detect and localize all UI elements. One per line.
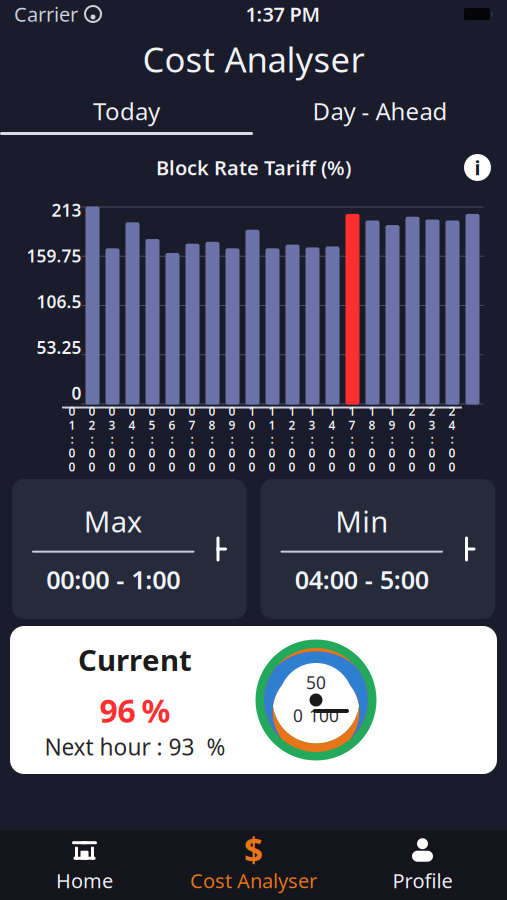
staticText: 04:00 - 5:00 [295,563,429,596]
staticText: 0 [288,445,295,461]
staticText: 1 [268,403,275,419]
staticText: 3 [108,417,115,433]
staticText: 0 [428,445,435,461]
staticText: 0 [168,459,175,475]
staticText: 0 [188,445,195,461]
staticText: : [270,431,273,447]
staticText: 1 [268,417,275,433]
button[interactable]: Home [0,830,169,900]
button[interactable]: Day - Ahead [253,90,507,132]
staticText: 2 [448,403,455,419]
staticText: 6 [168,417,175,433]
staticText: 7 [348,417,355,433]
staticText: 3 [428,417,435,433]
staticText: : [350,431,353,447]
staticText: : [250,431,253,447]
staticText: 8 [208,417,215,433]
staticText: 1 [348,403,355,419]
staticText: : [90,431,93,447]
staticText: 2 [88,417,95,433]
staticText: 0 [388,459,395,475]
staticText: 1 [288,403,295,419]
staticText: 0 [108,459,115,475]
button[interactable]: Min [260,479,495,619]
button[interactable]: Max [12,479,246,619]
staticText: 0 [128,403,135,419]
staticText: 5 [148,417,155,433]
staticText: : [210,431,213,447]
staticText: : [170,431,173,447]
staticText: Cost Analyser [190,867,317,894]
staticText: 4 [128,417,135,433]
staticText: 00:00 - 1:00 [46,563,180,596]
staticText: : [130,431,133,447]
staticText: 0 [148,445,155,461]
staticText: 0 [288,459,295,475]
staticText: 0 [408,417,415,433]
staticText: 2 [428,403,435,419]
staticText: Next hour : 93 % [44,732,225,762]
staticText: 0 [108,403,115,419]
staticText: Home [56,867,113,894]
staticText: 0 [148,459,155,475]
staticText: : [450,431,453,447]
staticText: $ [244,827,263,871]
staticText: 0 [208,445,215,461]
staticText: 0 [228,403,235,419]
staticText: 0 [168,445,175,461]
staticText: Current [78,640,192,679]
staticText: 0 [208,459,215,475]
staticText: : [370,431,373,447]
staticText: 0 [188,459,195,475]
staticText: : [150,431,153,447]
staticText: 9 [228,417,235,433]
staticText: 1:37 PM [245,1,320,27]
staticText: 106.5 [36,290,81,313]
staticText: : [310,431,313,447]
staticText: 0 [228,445,235,461]
staticText: 0 [88,459,95,475]
staticText: 3 [308,417,315,433]
staticText: 0 [248,445,255,461]
staticText: 0 [128,445,135,461]
button[interactable]: Profile [338,830,507,900]
staticText: 0 [108,445,115,461]
staticText: 0 [388,445,395,461]
staticText: : [390,431,393,447]
staticText: i [474,154,480,181]
staticText: 0 [408,445,415,461]
staticText: 0 [268,459,275,475]
staticText: 50 [306,671,326,694]
button[interactable]: Today [0,90,253,132]
staticText: 2 [408,403,415,419]
staticText: 7 [188,417,195,433]
staticText: 1 [308,403,315,419]
staticText: 0 [68,459,75,475]
staticText: Today [93,95,160,127]
button[interactable]: $ [169,830,338,900]
staticText: 0 [448,445,455,461]
staticText: 0 [248,417,255,433]
staticText: 0 [268,445,275,461]
staticText: 0 [68,403,75,419]
staticText: : [290,431,293,447]
staticText: 0 [128,459,135,475]
staticText: 1 [368,403,375,419]
staticText: 0 [88,445,95,461]
button[interactable]: Information about block rate tariff [464,154,491,181]
staticText: 0 [248,459,255,475]
staticText: 0 [148,403,155,419]
staticText: 0 [348,459,355,475]
staticText: 0 [328,445,335,461]
staticText: 53.25 [36,336,81,359]
staticText: 2 [288,417,295,433]
staticText: 0 [228,459,235,475]
staticText: 0 [188,403,195,419]
staticText: Day - Ahead [312,95,447,127]
staticText: 0 [308,459,315,475]
staticText: 4 [448,417,455,433]
staticText: Carrier [14,1,78,27]
staticText: 0 [208,403,215,419]
staticText: 0 [368,445,375,461]
staticText: 0 [168,403,175,419]
